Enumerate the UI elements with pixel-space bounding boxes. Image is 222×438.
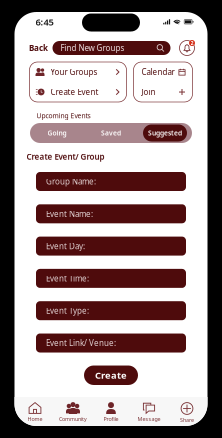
staticText: 2 — [190, 39, 193, 47]
button[interactable]: Event Link/ Venue: — [36, 333, 186, 352]
staticText: Create Event/ Group — [26, 151, 104, 162]
staticText: Share — [180, 416, 194, 424]
staticText: Community — [59, 415, 87, 423]
staticText: Create — [95, 369, 127, 381]
button[interactable]: Event Name: — [36, 204, 186, 223]
staticText: Calendar — [141, 67, 174, 77]
button[interactable]: Create — [84, 365, 138, 385]
staticText: Join — [141, 87, 155, 97]
button[interactable]: Message — [130, 397, 168, 430]
button[interactable]: Suggested — [138, 124, 192, 142]
button[interactable]: Home — [16, 397, 54, 430]
button[interactable]: Going — [30, 124, 84, 142]
staticText: Event Name: — [46, 208, 93, 219]
staticText: Upcoming Events — [36, 111, 90, 120]
button[interactable]: Calendar — [133, 62, 192, 82]
staticText: Suggested — [148, 129, 182, 137]
staticText: Event Day: — [46, 241, 85, 251]
staticText: Your Groups — [50, 67, 97, 77]
staticText: Group Name: — [46, 176, 96, 187]
button[interactable]: Back — [25, 41, 51, 55]
staticText: Profile — [103, 415, 118, 423]
staticText: Home — [27, 415, 42, 423]
staticText: Find New Groups — [60, 43, 124, 53]
button[interactable]: Event Time: — [36, 269, 186, 288]
button[interactable]: Notifications — [178, 39, 195, 56]
button[interactable]: Profile — [92, 397, 130, 430]
button[interactable]: Event Day: — [36, 237, 186, 256]
staticText: Saved — [101, 129, 121, 137]
button[interactable]: Share — [168, 397, 206, 430]
staticText: 6:45 — [35, 16, 53, 28]
staticText: Create Event — [50, 87, 98, 97]
staticText: Back — [29, 43, 48, 53]
button[interactable]: Event Type: — [36, 301, 186, 320]
button[interactable]: Group Name: — [36, 172, 186, 191]
button[interactable]: Saved — [84, 124, 138, 142]
button[interactable]: Join — [133, 82, 192, 102]
staticText: Going — [47, 129, 66, 137]
staticText: Event Link/ Venue: — [46, 338, 116, 348]
button[interactable]: Community — [54, 397, 92, 430]
button[interactable]: Create Event — [29, 82, 126, 102]
button[interactable]: Find New Groups — [52, 41, 170, 55]
staticText: Message — [137, 415, 160, 423]
staticText: Event Type: — [46, 305, 89, 316]
staticText: Event Time: — [46, 273, 89, 284]
button[interactable]: Your Groups — [29, 62, 126, 82]
